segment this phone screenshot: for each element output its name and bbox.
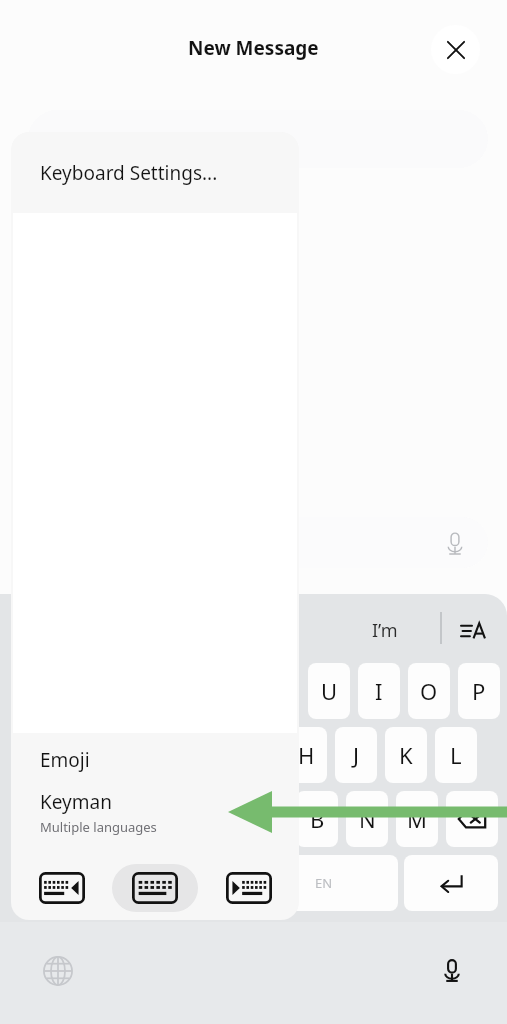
button[interactable]: Voice input bbox=[22, 517, 488, 568]
staticText: New Message bbox=[188, 35, 319, 61]
button[interactable]: Backspace bbox=[446, 791, 498, 847]
button[interactable]: Close bbox=[431, 25, 480, 74]
staticText: K bbox=[399, 740, 413, 770]
button[interactable]: P bbox=[458, 663, 500, 719]
button[interactable]: Text options bbox=[452, 610, 494, 652]
button[interactable]: Previous keyboard bbox=[24, 864, 100, 912]
button[interactable]: I’m bbox=[330, 608, 440, 652]
staticText: I’m bbox=[372, 618, 398, 643]
staticText: O bbox=[420, 676, 438, 706]
staticText: M bbox=[407, 804, 427, 834]
staticText: Keyboard Settings... bbox=[40, 160, 218, 186]
button[interactable]: Keyman bbox=[11, 787, 299, 853]
button[interactable]: Voice input bbox=[442, 530, 468, 556]
button[interactable]: Voice typing bbox=[430, 948, 474, 992]
button[interactable]: M bbox=[396, 791, 438, 847]
staticText: L bbox=[450, 740, 462, 770]
staticText: EN bbox=[315, 874, 333, 892]
button[interactable]: U bbox=[308, 663, 350, 719]
staticText: J bbox=[353, 740, 360, 770]
button[interactable]: Change language bbox=[36, 949, 80, 993]
button[interactable]: Next keyboard bbox=[211, 864, 287, 912]
staticText: B bbox=[310, 804, 325, 834]
button[interactable]: N bbox=[346, 791, 388, 847]
button[interactable]: I bbox=[358, 663, 400, 719]
staticText: Keyman bbox=[40, 789, 112, 815]
button[interactable]: Emoji bbox=[11, 733, 299, 787]
staticText: I bbox=[375, 676, 383, 706]
staticText: N bbox=[359, 804, 376, 834]
button[interactable]: K bbox=[385, 727, 427, 783]
staticText: P bbox=[472, 676, 486, 706]
button[interactable]: Enter bbox=[404, 855, 498, 911]
staticText: Multiple languages bbox=[40, 818, 157, 836]
staticText: U bbox=[321, 676, 338, 706]
button[interactable]: EN bbox=[250, 855, 398, 911]
staticText: H bbox=[298, 740, 315, 770]
button[interactable]: B bbox=[296, 791, 338, 847]
button[interactable]: Keyboard Settings... bbox=[11, 132, 299, 213]
button[interactable]: L bbox=[435, 727, 477, 783]
button[interactable]: J bbox=[335, 727, 377, 783]
button[interactable] bbox=[28, 110, 488, 168]
button[interactable]: O bbox=[408, 663, 450, 719]
button[interactable]: H bbox=[285, 727, 327, 783]
staticText: Emoji bbox=[40, 747, 90, 773]
button[interactable]: Current keyboard bbox=[112, 864, 198, 912]
